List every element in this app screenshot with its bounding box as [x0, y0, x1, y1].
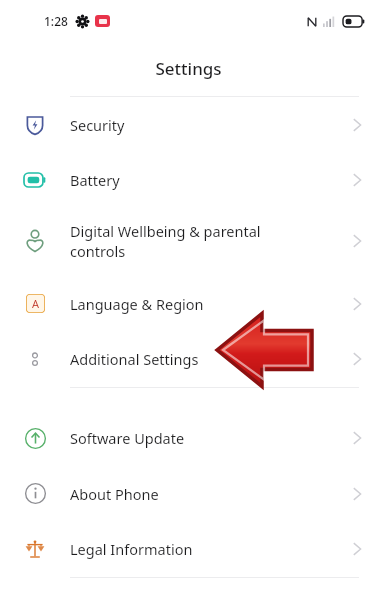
button[interactable]: Digital Wellbeing & parental controls: [0, 206, 377, 276]
staticText: Language & Region: [70, 294, 204, 314]
button[interactable]: Software Update: [0, 410, 377, 466]
staticText: A: [32, 296, 40, 311]
staticText: Software Update: [70, 428, 185, 448]
staticText: Digital Wellbeing & parental controls: [70, 221, 261, 262]
staticText: Battery: [70, 170, 120, 190]
button[interactable]: Legal Information: [0, 521, 377, 577]
staticText: Settings: [155, 57, 222, 80]
button[interactable]: About Phone: [0, 466, 377, 521]
other: Pointer highlighting Additional Settings: [215, 311, 315, 389]
button[interactable]: Additional Settings: [0, 331, 377, 387]
staticText: Legal Information: [70, 539, 193, 559]
button[interactable]: Security: [0, 97, 377, 153]
staticText: Security: [70, 115, 125, 135]
button[interactable]: A: [0, 276, 377, 331]
button[interactable]: Battery: [0, 153, 377, 206]
staticText: About Phone: [70, 484, 159, 504]
staticText: 1:28: [44, 13, 68, 29]
staticText: Additional Settings: [70, 349, 199, 369]
